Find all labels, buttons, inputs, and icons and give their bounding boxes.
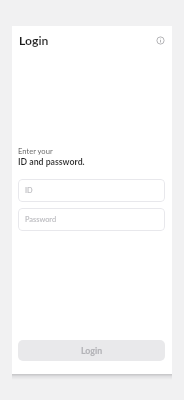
button[interactable]: Login — [15, 30, 53, 51]
button[interactable]: Login — [18, 340, 165, 361]
staticText: Password — [25, 215, 57, 224]
button[interactable]: ID — [18, 179, 165, 202]
staticText: Login — [19, 33, 49, 48]
button[interactable]: Information — [153, 33, 168, 48]
button[interactable]: Password — [18, 208, 165, 231]
staticText: Login — [81, 345, 103, 356]
staticText: Enter your — [18, 146, 53, 155]
staticText: ID and password. — [18, 156, 85, 166]
staticText: ID — [25, 186, 33, 195]
